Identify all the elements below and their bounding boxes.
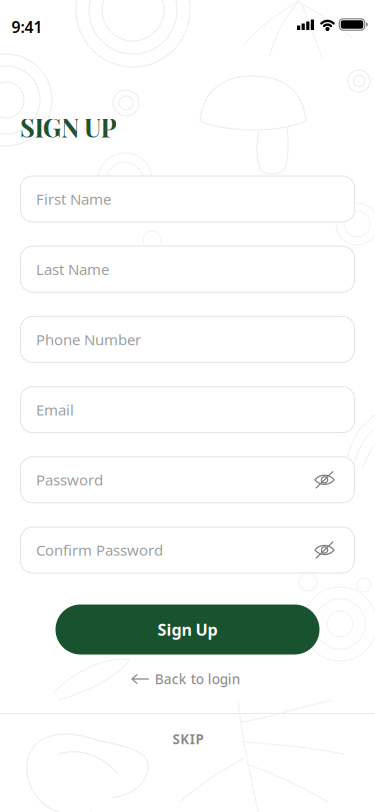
staticText: SIGN UP <box>20 110 116 144</box>
staticText: Email <box>36 399 74 420</box>
button[interactable]: Password <box>20 456 355 503</box>
staticText: Last Name <box>36 259 109 279</box>
staticText: Confirm Password <box>36 540 163 560</box>
staticText: Back to login <box>155 670 241 688</box>
staticText: Password <box>36 470 103 490</box>
staticText: Phone Number <box>36 329 141 349</box>
button[interactable]: Phone Number <box>20 316 355 363</box>
button[interactable]: Email <box>20 386 355 433</box>
button[interactable]: Show password <box>315 471 334 488</box>
button[interactable]: Back to login <box>131 670 241 688</box>
button[interactable]: Confirm Password <box>20 526 355 573</box>
staticText: 9:41 <box>11 16 42 38</box>
button[interactable]: SKIP <box>148 729 228 749</box>
staticText: Sign Up <box>157 618 217 640</box>
button[interactable]: Sign Up <box>55 604 319 654</box>
button[interactable]: First Name <box>20 175 355 222</box>
staticText: First Name <box>36 189 111 209</box>
button[interactable]: Last Name <box>20 246 355 293</box>
staticText: SKIP <box>173 730 203 748</box>
button[interactable]: Show password <box>315 541 334 558</box>
